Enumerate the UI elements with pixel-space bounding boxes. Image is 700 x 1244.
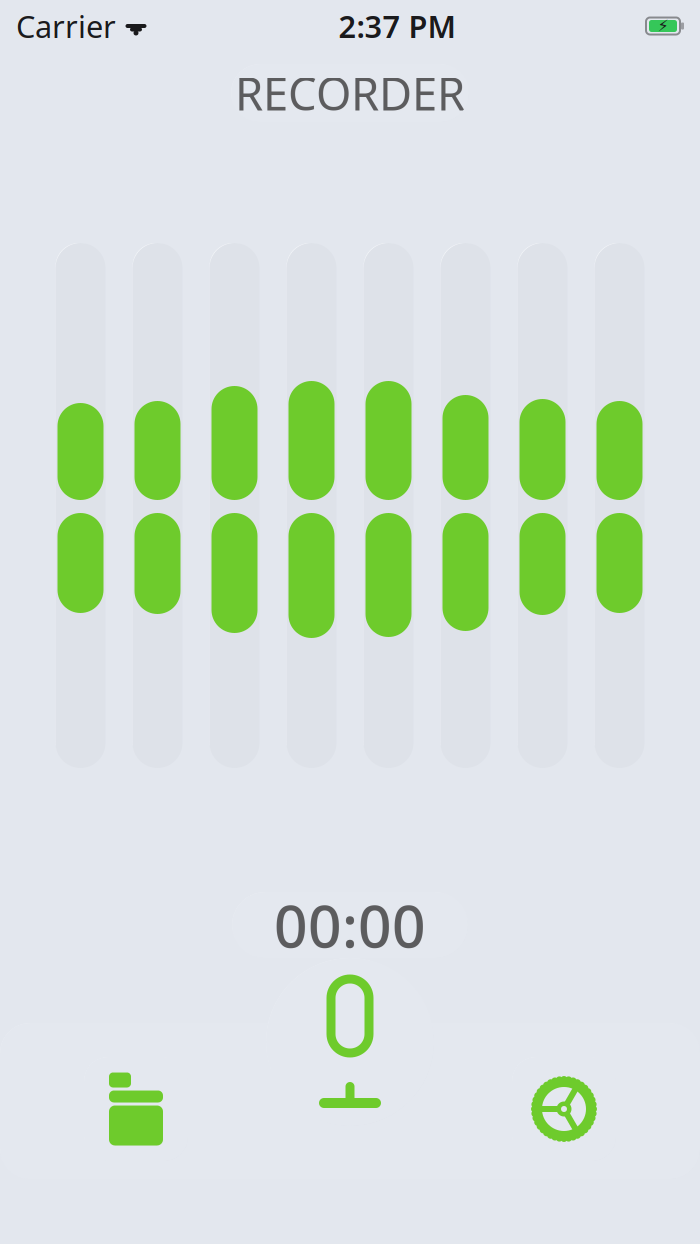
button[interactable]: Recordings (84, 1057, 188, 1161)
button[interactable]: RECORDER (231, 64, 469, 122)
staticText: Carrier (16, 6, 116, 46)
button[interactable]: Settings (512, 1057, 616, 1161)
staticText: ⚡︎ (657, 17, 668, 35)
staticText: 00:00 (274, 886, 426, 964)
button[interactable]: Record (266, 958, 434, 1126)
staticText: 2:37 PM (338, 6, 455, 46)
staticText: RECORDER (235, 63, 465, 123)
